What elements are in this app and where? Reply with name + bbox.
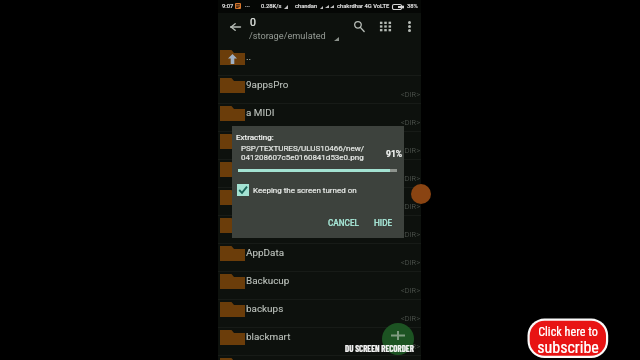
staticText: AppData <box>246 247 285 259</box>
staticText: ... <box>245 2 250 9</box>
button[interactable]: backups <box>218 300 421 328</box>
staticText: Backucup <box>246 275 290 287</box>
button[interactable]: Back <box>224 16 246 38</box>
staticText: /storage/emulated <box>249 30 326 41</box>
staticText: PSP/TEXTURES/ULUS10466/new/ <box>241 144 364 153</box>
button[interactable]: Android <box>218 160 421 188</box>
button[interactable]: Keeping the screen turned on <box>237 184 357 196</box>
staticText: <DIR> <box>401 146 421 155</box>
button[interactable]: a MIDI <box>218 104 421 132</box>
staticText: HIDE <box>374 218 393 228</box>
staticText: Anime <box>246 191 275 203</box>
button[interactable]: Alarms <box>218 132 421 160</box>
staticText: Alarms <box>246 135 278 147</box>
staticText: Android <box>246 163 281 175</box>
staticText: <DIR> <box>401 230 421 239</box>
staticText: Click here to <box>538 325 598 339</box>
staticText: 0 <box>250 16 256 28</box>
button[interactable]: bluetooth <box>218 356 421 360</box>
staticText: <DIR> <box>401 90 421 99</box>
button[interactable]: Search <box>348 15 370 37</box>
staticText: 041208607c5e0160841d53e0.png <box>241 153 364 162</box>
button[interactable]: HIDE <box>372 216 395 230</box>
staticText: DU SCREEN RECORDER <box>345 343 414 354</box>
button[interactable]: CANCEL <box>326 216 361 230</box>
button[interactable]: Click here to <box>525 315 612 360</box>
staticText: Keeping the screen turned on <box>253 186 357 195</box>
staticText: chakrdhar 4G VoLTE <box>337 3 390 10</box>
staticText: 38% <box>407 3 418 10</box>
staticText: 0.28K/s <box>261 3 282 10</box>
staticText: 9appsPro <box>246 79 289 91</box>
button[interactable]: AppData <box>218 244 421 272</box>
staticText: backups <box>246 303 284 315</box>
staticText: subscribe <box>537 338 599 357</box>
button[interactable]: .. <box>218 48 421 76</box>
staticText: <DIR> <box>401 286 421 295</box>
staticText: blackmart <box>246 331 291 343</box>
staticText: CANCEL <box>328 218 359 228</box>
button[interactable]: Grid view <box>374 15 396 37</box>
staticText: <DIR> <box>401 258 421 267</box>
staticText: 9:07 <box>222 3 234 10</box>
button[interactable]: blackmart <box>218 328 421 356</box>
button[interactable]: Backucup <box>218 272 421 300</box>
staticText: a MIDI <box>246 107 275 119</box>
staticText: <DIR> <box>401 314 421 323</box>
staticText: <DIR> <box>401 118 421 127</box>
staticText: <DIR> <box>401 342 421 351</box>
button[interactable]: New <box>382 323 414 355</box>
staticText: .. <box>246 51 252 63</box>
staticText: <DIR> <box>401 174 421 183</box>
button[interactable]: Anime <box>218 188 421 216</box>
staticText: 91% <box>386 149 403 159</box>
staticText: Extracting: <box>236 133 274 142</box>
staticText: <DIR> <box>401 202 421 211</box>
button[interactable]: 9appsPro <box>218 76 421 104</box>
button[interactable]: More options <box>398 15 420 37</box>
staticText: chandan <box>295 3 318 10</box>
button[interactable]: apkpure <box>218 216 421 244</box>
